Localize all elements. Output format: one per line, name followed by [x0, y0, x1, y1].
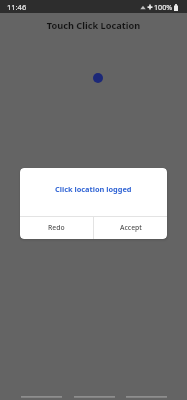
button[interactable]: Redo: [20, 217, 93, 239]
button[interactable]: Recents: [126, 390, 167, 400]
staticText: Click location logged: [55, 184, 132, 194]
staticText: Accept: [120, 223, 142, 232]
button[interactable]: Touch area: [0, 13, 187, 390]
button[interactable]: Back: [21, 390, 62, 400]
staticText: 100%: [154, 2, 173, 12]
button[interactable]: Home: [74, 390, 115, 400]
staticText: Redo: [48, 223, 65, 232]
button[interactable]: Accept: [94, 217, 167, 239]
staticText: Touch Click Location: [0, 19, 187, 32]
staticText: 11:46: [7, 2, 27, 12]
